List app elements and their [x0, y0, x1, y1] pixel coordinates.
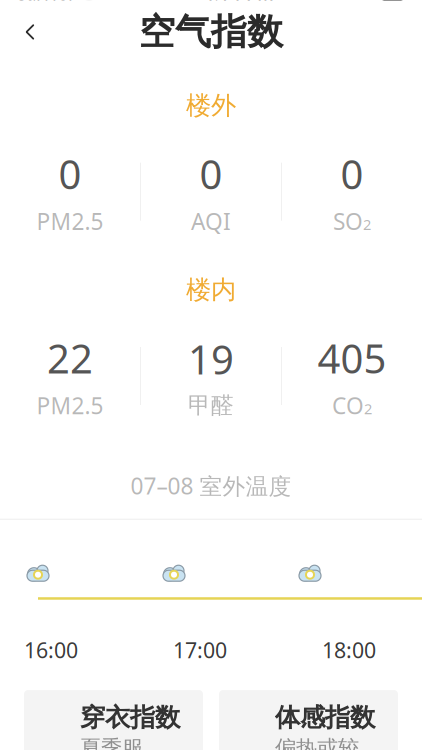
button[interactable]: Back [8, 10, 52, 54]
staticText: 甲醛 [188, 392, 234, 419]
staticText: 体感指数 [275, 702, 375, 733]
staticText: 405 [317, 331, 386, 384]
staticText: 楼内 [186, 274, 236, 305]
staticText: 2 [364, 399, 372, 418]
staticText: 0 [58, 147, 81, 200]
staticText: 16:00 [24, 636, 78, 664]
staticText: PM2.5 [36, 390, 103, 421]
staticText: 07–08 室外温度 [130, 471, 291, 501]
button[interactable]: 体感指数 [219, 690, 398, 750]
staticText: 4:14 PM [203, 0, 274, 5]
staticText: 空气指数 [139, 10, 283, 54]
staticText: 17:00 [173, 636, 227, 664]
staticText: 19 [188, 332, 234, 386]
staticText: CO [332, 390, 364, 421]
staticText: AQI [191, 206, 231, 236]
staticText: PM2.5 [36, 206, 103, 236]
staticText: 2 [363, 214, 371, 234]
staticText: 楼外 [186, 90, 236, 121]
staticText: 0 [199, 147, 222, 200]
staticText: 22 [47, 331, 93, 384]
staticText: 偏热或较热，天气有 [275, 735, 359, 750]
staticText: 夏季服装：适宜穿短 [80, 735, 164, 750]
staticText: 18:00 [322, 636, 376, 664]
button[interactable]: 穿衣指数 [24, 690, 203, 750]
staticText: Carrier [14, 0, 76, 5]
staticText: SO [333, 206, 363, 236]
staticText: 穿衣指数 [80, 702, 180, 733]
staticText: 0 [340, 147, 363, 200]
